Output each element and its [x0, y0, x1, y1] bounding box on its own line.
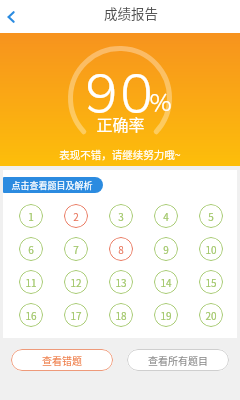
button[interactable]: 点击查看题目及解析: [3, 177, 103, 193]
button[interactable]: 19: [154, 303, 178, 327]
staticText: 20: [205, 308, 217, 322]
staticText: 表现不错，请继续努力哦~: [59, 147, 181, 162]
button[interactable]: 10: [199, 237, 223, 261]
button[interactable]: 12: [64, 270, 88, 294]
staticText: 查看所有题目: [148, 353, 208, 367]
button[interactable]: 4: [154, 204, 178, 228]
staticText: 15: [205, 275, 217, 289]
staticText: 2: [73, 209, 79, 223]
button[interactable]: 6: [19, 237, 43, 261]
staticText: 11: [25, 275, 37, 289]
staticText: 8: [118, 242, 124, 256]
button[interactable]: 7: [64, 237, 88, 261]
staticText: 查看错题: [42, 353, 82, 367]
button[interactable]: Back: [0, 1, 27, 33]
button[interactable]: 查看所有题目: [127, 349, 229, 371]
staticText: 12: [70, 275, 82, 289]
staticText: 13: [115, 275, 127, 289]
button[interactable]: 9: [154, 237, 178, 261]
button[interactable]: 18: [109, 303, 133, 327]
button[interactable]: 查看错题: [11, 349, 113, 371]
staticText: 16: [25, 308, 37, 322]
staticText: 6: [28, 242, 34, 256]
staticText: 成绩报告: [104, 3, 158, 23]
staticText: 7: [73, 242, 79, 256]
button[interactable]: 1: [19, 204, 43, 228]
button[interactable]: 20: [199, 303, 223, 327]
button[interactable]: 8: [109, 237, 133, 261]
button[interactable]: 11: [19, 270, 43, 294]
staticText: 9: [163, 242, 169, 256]
staticText: 14: [160, 275, 172, 289]
staticText: 1: [28, 209, 34, 223]
button[interactable]: 2: [64, 204, 88, 228]
staticText: 18: [115, 308, 127, 322]
staticText: 5: [208, 209, 214, 223]
button[interactable]: 13: [109, 270, 133, 294]
staticText: 3: [118, 209, 124, 223]
staticText: 19: [160, 308, 172, 322]
staticText: 10: [205, 242, 217, 256]
staticText: 点击查看题目及解析: [11, 179, 93, 192]
button[interactable]: 17: [64, 303, 88, 327]
button[interactable]: 14: [154, 270, 178, 294]
button[interactable]: 3: [109, 204, 133, 228]
staticText: 17: [70, 308, 82, 322]
staticText: 90: [85, 57, 156, 132]
staticText: 正确率: [96, 112, 145, 135]
button[interactable]: 5: [199, 204, 223, 228]
staticText: %: [149, 86, 173, 120]
button[interactable]: 15: [199, 270, 223, 294]
staticText: 4: [163, 209, 169, 223]
button[interactable]: 16: [19, 303, 43, 327]
